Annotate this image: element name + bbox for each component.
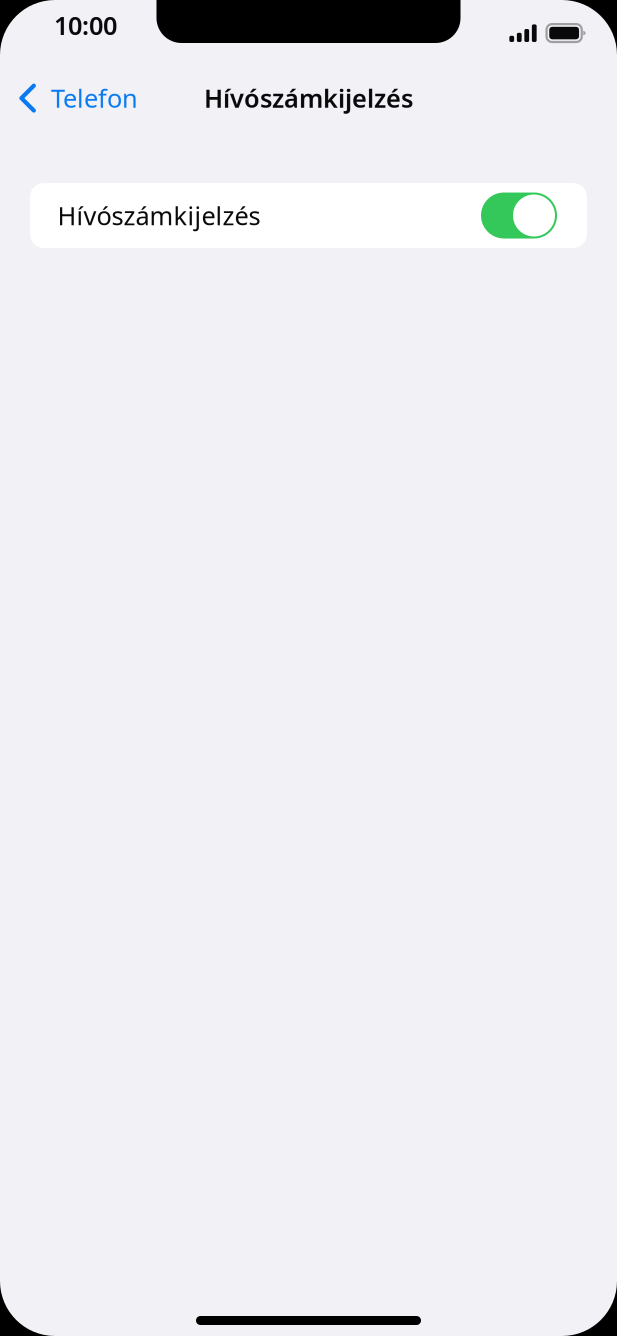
staticText: 10:00 xyxy=(54,8,117,42)
button[interactable]: Telefon xyxy=(0,73,152,123)
staticText: Hívószámkijelzés xyxy=(204,81,413,115)
staticText: Hívószámkijelzés xyxy=(57,199,260,232)
button[interactable]: Hívószámkijelzés xyxy=(30,183,587,248)
staticText: Telefon xyxy=(51,81,138,115)
